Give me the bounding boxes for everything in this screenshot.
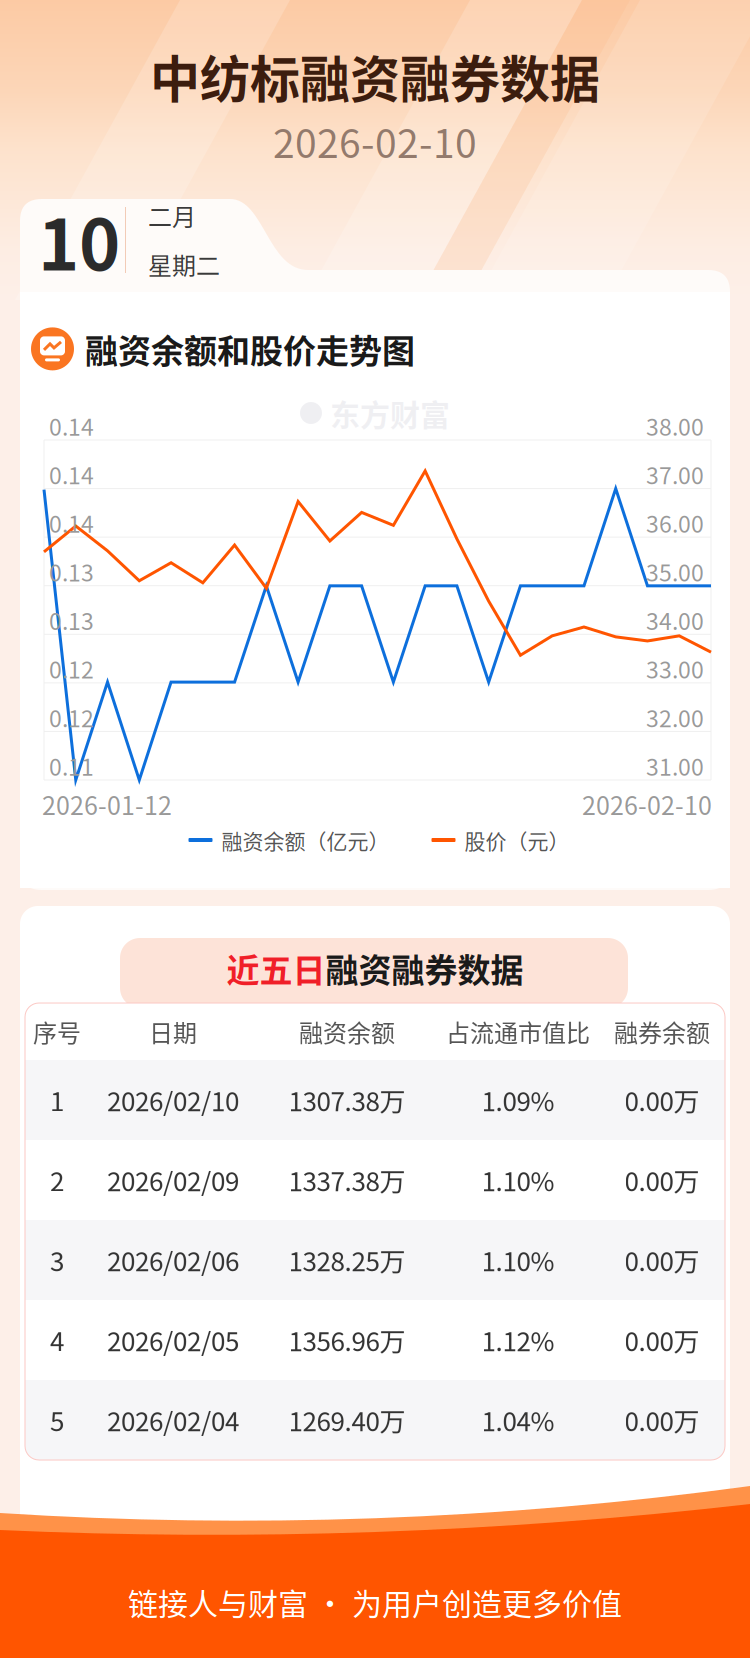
staticText: 中纺标融资融券数据 — [150, 40, 600, 112]
staticText: 日期 — [149, 1014, 197, 1049]
staticText: 38.00 — [646, 409, 704, 442]
staticText: 融资融券数据 — [325, 944, 523, 992]
staticText: 2026/02/04 — [107, 1401, 239, 1439]
staticText: 1328.25万 — [288, 1241, 405, 1279]
staticText: 0.00万 — [624, 1241, 699, 1279]
staticText: 序号 — [33, 1014, 81, 1049]
staticText: 1.12% — [481, 1321, 554, 1359]
staticText: 35.00 — [646, 555, 704, 588]
staticText: 0.00万 — [624, 1161, 699, 1199]
staticText: 1269.40万 — [288, 1401, 405, 1439]
staticText: 1 — [50, 1081, 64, 1119]
staticText: 33.00 — [646, 652, 704, 685]
staticText: 0.00万 — [624, 1321, 699, 1359]
staticText: 1.10% — [481, 1241, 554, 1279]
staticText: 0.12 — [49, 700, 94, 734]
staticText: 4 — [50, 1321, 64, 1359]
staticText: 融资余额 — [299, 1014, 395, 1049]
staticText: 1.04% — [481, 1401, 554, 1439]
staticText: 1.10% — [481, 1161, 554, 1199]
staticText: 32.00 — [646, 700, 704, 734]
staticText: 0.13 — [49, 603, 94, 637]
staticText: 1356.96万 — [288, 1321, 405, 1359]
staticText: 10 — [38, 189, 120, 291]
staticText: 0.14 — [49, 506, 94, 539]
staticText: 近五日 — [226, 944, 325, 992]
staticText: 融券余额 — [614, 1014, 710, 1049]
staticText: 2026-01-12 — [42, 786, 172, 822]
staticText: 5 — [50, 1401, 64, 1439]
staticText: 0.12 — [49, 652, 94, 685]
staticText: 融资余额（亿元） — [221, 825, 389, 855]
staticText: 3 — [50, 1241, 64, 1279]
staticText: 1.09% — [481, 1081, 554, 1119]
staticText: 星期二 — [148, 247, 220, 282]
staticText: 2 — [50, 1161, 64, 1199]
staticText: 31.00 — [646, 749, 704, 782]
staticText: 1307.38万 — [288, 1081, 405, 1119]
staticText: 0.00万 — [624, 1401, 699, 1439]
staticText: 二月 — [148, 198, 196, 233]
staticText: 37.00 — [646, 458, 704, 491]
staticText: 2026-02-10 — [582, 786, 712, 822]
staticText: 2026/02/06 — [107, 1241, 239, 1279]
staticText: 0.13 — [49, 555, 94, 588]
staticText: 1337.38万 — [288, 1161, 405, 1199]
staticText: 股价（元） — [464, 825, 569, 855]
staticText: 东方财富 — [330, 391, 450, 435]
staticText: 链接人与财富 · 为用户创造更多价值 — [128, 1580, 622, 1624]
staticText: 占流通市值比 — [446, 1014, 590, 1049]
staticText: 0.14 — [49, 409, 94, 442]
staticText: 2026/02/09 — [107, 1161, 239, 1199]
staticText: 0.11 — [49, 749, 94, 782]
staticText: 0.14 — [49, 458, 94, 491]
staticText: 36.00 — [646, 506, 704, 539]
staticText: 2026/02/05 — [107, 1321, 239, 1359]
staticText: 2026/02/10 — [107, 1081, 239, 1119]
staticText: 0.00万 — [624, 1081, 699, 1119]
staticText: 2026-02-10 — [273, 113, 477, 169]
staticText: 34.00 — [646, 603, 704, 637]
staticText: 融资余额和股价走势图 — [85, 325, 415, 373]
